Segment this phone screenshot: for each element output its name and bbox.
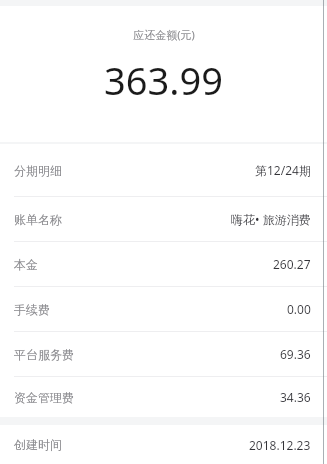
button[interactable]: 资金管理费 [0,377,327,417]
staticText: 69.36 [280,346,311,362]
staticText: 363.99 [104,54,223,106]
staticText: 0.00 [287,301,311,317]
button[interactable]: 平台服务费 [0,332,327,376]
button[interactable]: 本金 [0,242,327,286]
staticText: 平台服务费 [14,347,74,362]
button[interactable]: 账单名称 [0,197,327,241]
staticText: 资金管理费 [14,390,74,405]
staticText: 手续费 [14,302,50,317]
staticText: 本金 [14,257,38,272]
button[interactable]: 手续费 [0,287,327,331]
staticText: 嗨花• 旅游消费 [231,211,311,227]
staticText: 分期明细 [14,163,62,178]
button[interactable]: 创建时间 [0,425,327,464]
staticText: 账单名称 [14,212,62,227]
staticText: 2018.12.23 [249,437,311,453]
staticText: 创建时间 [14,437,62,452]
staticText: 应还金额(元) [133,27,195,42]
staticText: 260.27 [273,256,311,272]
staticText: 34.36 [280,389,311,405]
staticText: 第12/24期 [255,162,311,178]
button[interactable]: 分期明细 [0,144,327,196]
